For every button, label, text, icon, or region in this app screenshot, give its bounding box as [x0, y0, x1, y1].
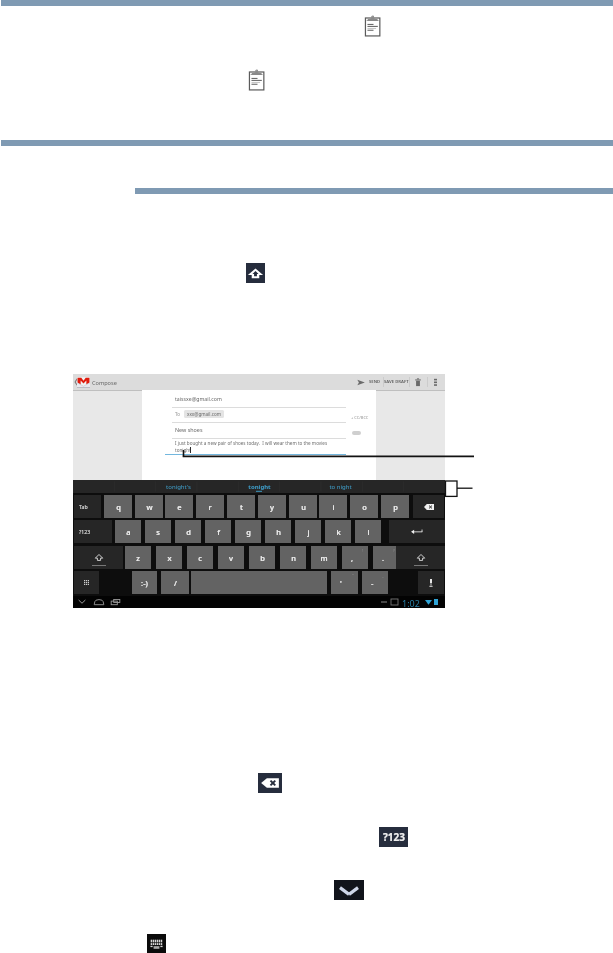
button[interactable]: f	[205, 520, 231, 543]
staticText: q	[116, 502, 121, 512]
button[interactable]: Shift	[74, 546, 123, 569]
staticText: r	[208, 502, 212, 512]
staticText: ?123	[383, 830, 405, 844]
button[interactable]: Voice input	[418, 571, 444, 594]
button[interactable]: w	[135, 495, 163, 518]
button[interactable]: Shift key	[246, 263, 265, 283]
button[interactable]: Backspace	[413, 495, 444, 518]
staticText: h	[276, 527, 281, 537]
button[interactable]: /	[161, 571, 189, 594]
staticText: b	[260, 553, 265, 563]
button[interactable]: :-)	[132, 571, 157, 594]
button[interactable]: ?123	[379, 827, 408, 847]
staticText: e	[177, 502, 182, 512]
staticText: ?123	[79, 528, 91, 535]
button[interactable]: '	[331, 571, 358, 594]
button[interactable]: d	[175, 520, 201, 543]
staticText: -	[371, 578, 374, 588]
button[interactable]: a	[115, 520, 141, 543]
button[interactable]: Recent apps	[111, 599, 120, 605]
staticText: to night	[329, 483, 352, 491]
staticText: w	[146, 502, 153, 512]
button[interactable]: p	[381, 495, 409, 518]
button[interactable]: Delete key	[258, 773, 282, 793]
staticText: v	[229, 553, 233, 563]
staticText: j	[307, 527, 310, 537]
button[interactable]: c	[187, 546, 213, 569]
button[interactable]: l	[355, 520, 381, 543]
button[interactable]: Keyboard	[147, 934, 166, 953]
staticText: x	[167, 553, 172, 563]
button[interactable]: SEND	[366, 379, 383, 385]
staticText: z	[136, 553, 140, 563]
staticText: '	[340, 578, 342, 588]
staticText: ?	[393, 548, 395, 553]
button[interactable]: q	[104, 495, 132, 518]
button[interactable]: g	[235, 520, 261, 543]
staticText: _	[382, 573, 384, 578]
button[interactable]: r	[196, 495, 224, 518]
button[interactable]: j	[295, 520, 321, 543]
button[interactable]: Back	[78, 599, 86, 604]
staticText: SAVE DRAFT	[384, 379, 409, 385]
staticText: a	[126, 527, 131, 537]
staticText: Compose	[92, 379, 117, 387]
button[interactable]: Send	[357, 379, 365, 386]
button[interactable]: k	[325, 520, 351, 543]
button[interactable]: i	[319, 495, 347, 518]
staticText: New shoes	[175, 426, 203, 433]
staticText: c	[198, 553, 202, 563]
staticText: tonight	[248, 483, 271, 491]
button[interactable]: Home	[94, 599, 104, 605]
button[interactable]: Discard	[415, 378, 421, 387]
button[interactable]: v	[218, 546, 244, 569]
button[interactable]: ,	[342, 546, 368, 569]
button[interactable]: h	[265, 520, 291, 543]
button[interactable]: s	[145, 520, 171, 543]
staticText: ,	[351, 553, 354, 563]
button[interactable]: z	[125, 546, 151, 569]
button[interactable]: tonight's	[148, 482, 208, 492]
staticText: d	[186, 527, 191, 537]
button[interactable]: m	[311, 546, 337, 569]
staticText: tonight's	[166, 483, 191, 491]
staticText: + CC/BCC	[351, 415, 369, 420]
button[interactable]: n	[280, 546, 306, 569]
button[interactable]: -	[362, 571, 388, 594]
button[interactable]: Note	[249, 69, 271, 95]
button[interactable]: Enter	[389, 520, 445, 543]
button[interactable]: .	[373, 546, 399, 569]
button[interactable]: t	[227, 495, 255, 518]
staticText: SEND	[369, 379, 381, 385]
staticText: I just bought a new pair of shoes today.…	[175, 440, 328, 446]
button[interactable]: tonight	[229, 482, 289, 492]
button[interactable]: y	[258, 495, 286, 518]
button[interactable]	[352, 431, 361, 435]
button[interactable]: Shift	[396, 546, 445, 569]
button[interactable]: e	[165, 495, 193, 518]
staticText: Tab	[79, 503, 88, 510]
button[interactable]: Hide keyboard	[334, 880, 364, 900]
staticText: g	[246, 527, 251, 537]
button[interactable]: Note	[365, 15, 387, 41]
button[interactable]: SAVE DRAFT	[384, 379, 409, 385]
button[interactable]: to night	[310, 482, 370, 492]
staticText: /	[174, 578, 177, 588]
staticText: tonight	[175, 447, 191, 453]
button[interactable]: u	[289, 495, 317, 518]
button[interactable]: Tab	[74, 495, 101, 518]
button[interactable]: x	[156, 546, 182, 569]
button[interactable]: Input method	[74, 571, 99, 594]
staticText: 1:02	[402, 597, 420, 609]
staticText: :-)	[141, 578, 148, 588]
staticText: m	[320, 553, 328, 563]
button[interactable]: b	[249, 546, 275, 569]
button[interactable]: More options	[434, 378, 437, 386]
staticText: xxx@gmail.com	[187, 411, 221, 417]
button[interactable]: o	[350, 495, 378, 518]
button[interactable]: ?123	[74, 520, 112, 543]
staticText: .	[382, 553, 385, 563]
staticText: To	[175, 411, 180, 417]
staticText: y	[270, 502, 274, 512]
